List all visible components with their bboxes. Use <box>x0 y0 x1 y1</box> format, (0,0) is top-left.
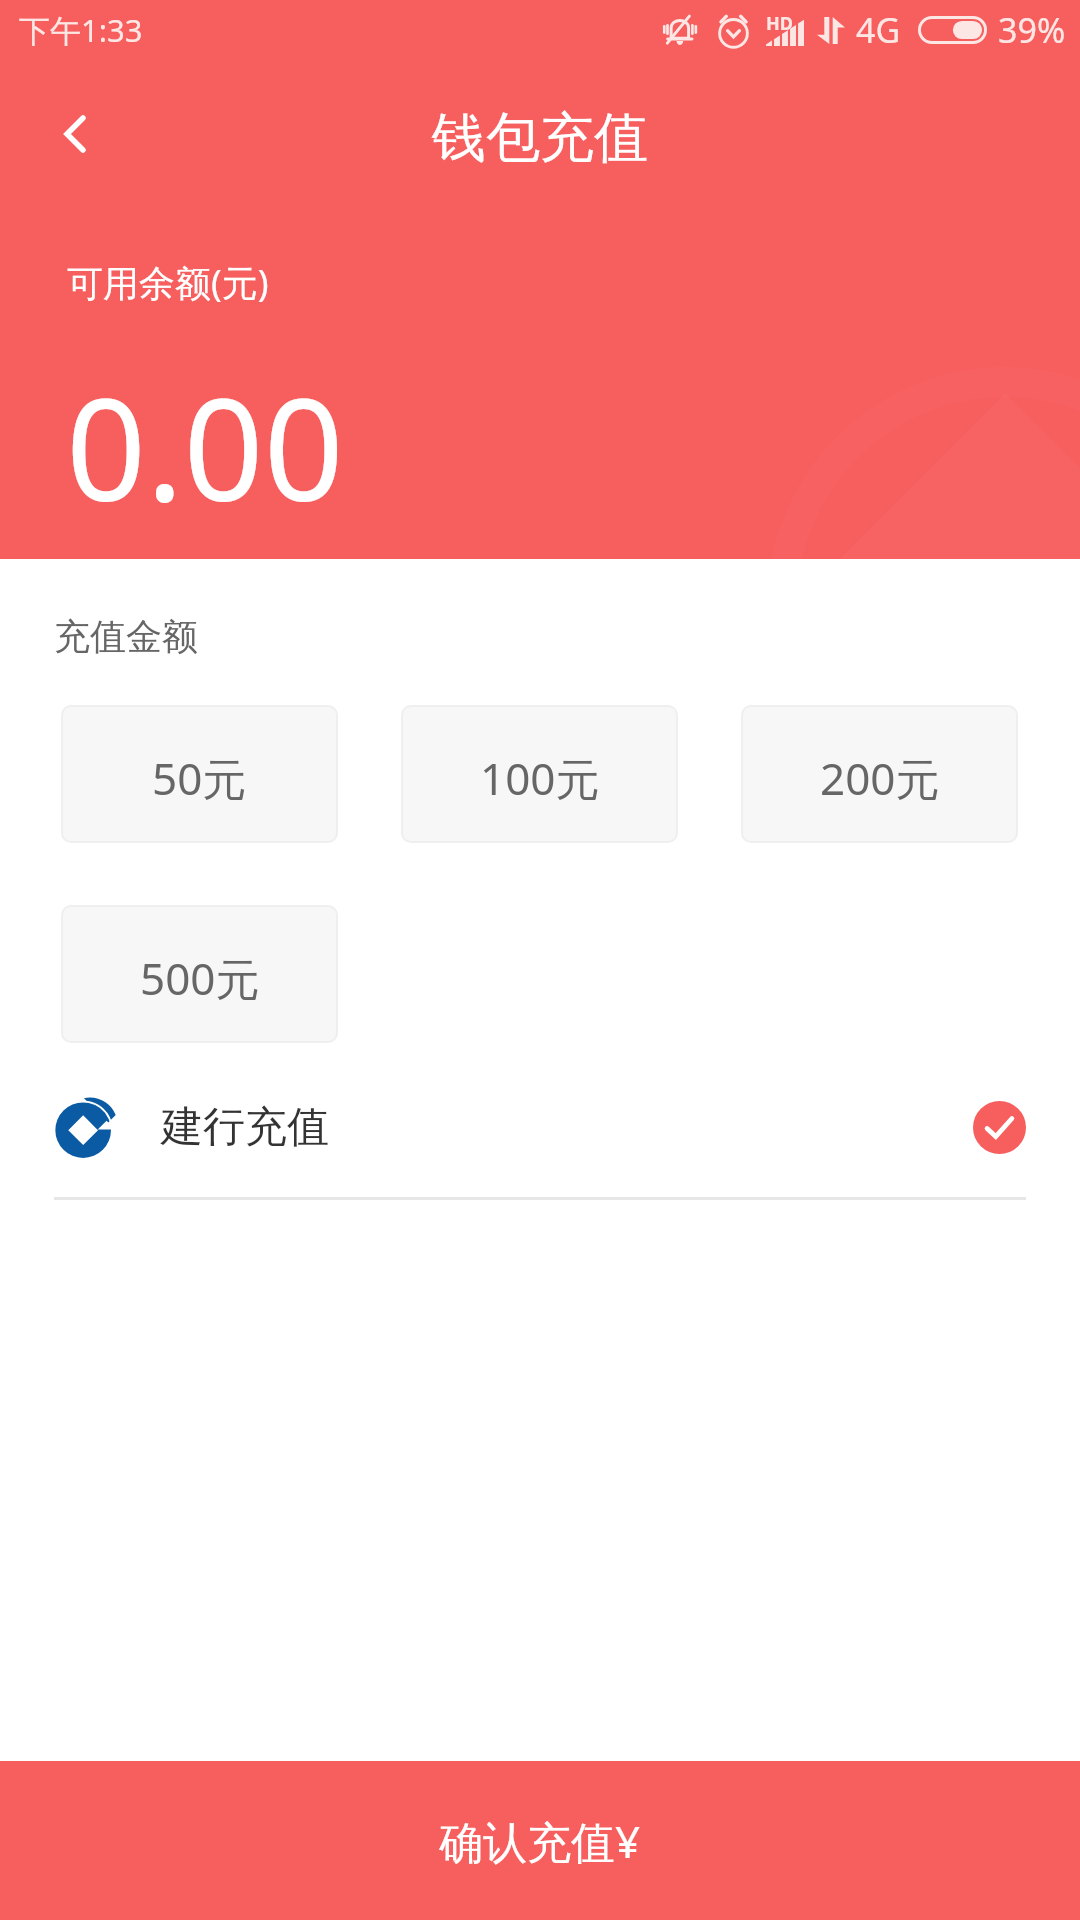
staticText: 钱包充值 <box>432 104 648 172</box>
staticText: 充值金额 <box>54 614 198 659</box>
staticText: 200元 <box>820 748 940 808</box>
button[interactable]: 200元 <box>743 707 1016 841</box>
button[interactable]: Selected <box>973 1101 1026 1154</box>
staticText: 0.00 <box>66 351 344 542</box>
staticText: 可用余额(元) <box>67 258 269 307</box>
button[interactable]: 500元 <box>63 907 336 1041</box>
staticText: 4G <box>856 7 901 53</box>
button[interactable]: 建行充值 <box>0 1069 1080 1185</box>
button[interactable]: 50元 <box>63 707 336 841</box>
staticText: HD <box>766 11 793 36</box>
staticText: 39% <box>998 7 1066 53</box>
button[interactable]: 确认充值¥ <box>0 1761 1080 1920</box>
button[interactable]: Back <box>20 79 130 189</box>
staticText: 100元 <box>480 748 600 808</box>
staticText: 50元 <box>152 748 247 808</box>
staticText: 建行充值 <box>161 1101 329 1154</box>
staticText: 确认充值¥ <box>439 1811 641 1871</box>
staticText: 下午1:33 <box>19 9 143 51</box>
button[interactable]: 100元 <box>403 707 676 841</box>
staticText: 500元 <box>140 948 260 1008</box>
